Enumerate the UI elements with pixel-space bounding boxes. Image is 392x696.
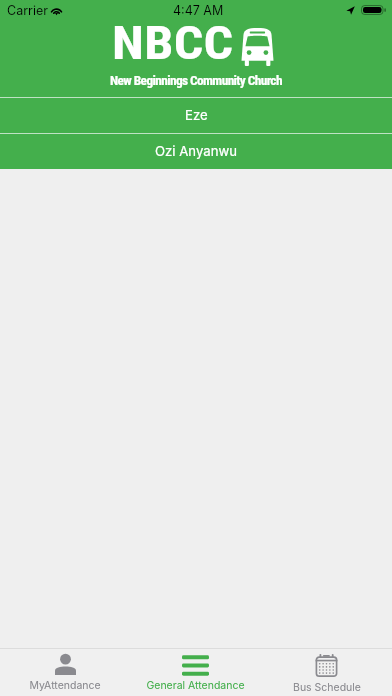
staticText: Carrier — [7, 3, 48, 18]
staticText: General Attendance — [146, 679, 245, 692]
staticText: MyAttendance — [29, 679, 101, 692]
button[interactable]: Ozi Anyanwu — [0, 133, 392, 169]
button[interactable]: Eze — [0, 97, 392, 133]
staticText: New Beginnings Community Church — [110, 73, 282, 89]
staticText: NBCC — [112, 17, 234, 70]
staticText: Bus Schedule — [293, 681, 361, 694]
other: Bus — [241, 28, 274, 66]
button[interactable]: Bus Schedule — [261, 649, 392, 694]
staticText: 4:47 AM — [173, 3, 224, 18]
button[interactable]: General Attendance — [130, 649, 261, 692]
staticText: Ozi Anyanwu — [155, 143, 238, 159]
staticText: Eze — [185, 107, 208, 123]
button[interactable]: MyAttendance — [0, 649, 130, 692]
